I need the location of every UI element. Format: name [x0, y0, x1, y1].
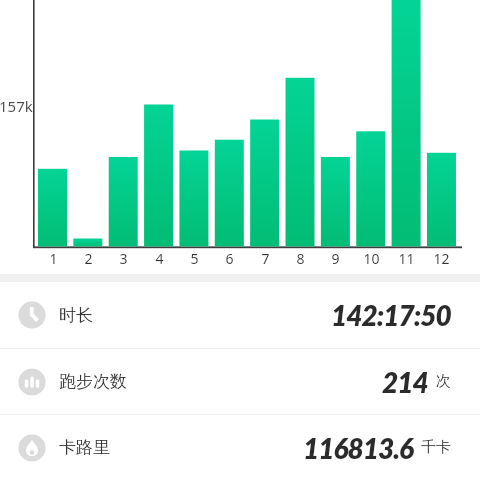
staticText: 11	[398, 249, 415, 268]
staticText: 7	[261, 249, 270, 268]
staticText: 千卡	[421, 438, 451, 457]
staticText: 10	[363, 249, 380, 268]
staticText: 5	[190, 249, 199, 268]
staticText: 卡路里	[59, 437, 110, 458]
staticText: 跑步次数	[59, 371, 127, 392]
staticText: 6	[225, 249, 234, 268]
button[interactable]: 跑步次数	[0, 349, 480, 414]
staticText: 2	[84, 249, 93, 268]
staticText: 4	[155, 249, 164, 268]
staticText: 9	[331, 249, 340, 268]
staticText: 157k	[0, 96, 33, 116]
staticText: 142:17:50	[331, 298, 451, 332]
button[interactable]: 卡路里	[0, 415, 480, 480]
staticText: 116813.6	[303, 431, 413, 465]
staticText: 8	[296, 249, 305, 268]
staticText: 3	[119, 249, 128, 268]
staticText: 12	[433, 249, 450, 268]
staticText: 214	[382, 365, 428, 399]
staticText: 次	[436, 372, 451, 391]
staticText: 时长	[59, 305, 93, 326]
button[interactable]: 时长	[0, 282, 480, 348]
staticText: 1	[49, 249, 58, 268]
